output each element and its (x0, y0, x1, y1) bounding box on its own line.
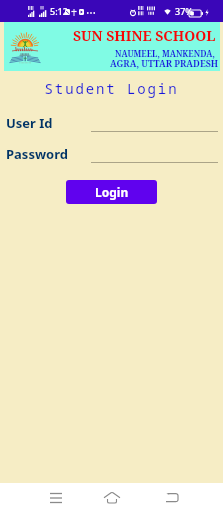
staticText: SUN SHINE SCHOOL (73, 26, 216, 45)
staticText: 5:12 (50, 5, 68, 17)
button[interactable]: Home (91, 483, 133, 512)
staticText: 37% (175, 5, 193, 17)
staticText: AGRA, UTTAR PRADESH (110, 57, 219, 69)
button[interactable]: Recent apps (36, 483, 76, 512)
staticText: User Id (6, 114, 53, 132)
staticText: Password (6, 145, 68, 163)
staticText: Login (95, 184, 129, 200)
button[interactable]: Back (152, 483, 192, 512)
button[interactable]: Login (66, 180, 157, 204)
staticText: Student Login (0, 79, 223, 98)
staticText: NAUMEEL, MANKENDA, (115, 48, 215, 59)
